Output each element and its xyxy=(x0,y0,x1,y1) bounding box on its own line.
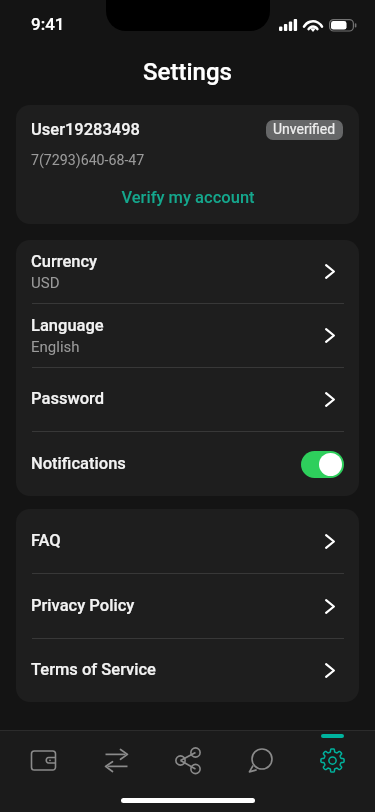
button[interactable]: Terms of Service xyxy=(16,639,359,702)
staticText: Privacy Policy xyxy=(31,596,135,615)
button[interactable]: Wallet xyxy=(7,731,80,793)
staticText: Password xyxy=(31,389,105,408)
button[interactable]: Unverified xyxy=(266,120,343,140)
staticText: 9:41 xyxy=(31,14,65,34)
button[interactable]: Password xyxy=(16,368,359,431)
staticText: 7(7293)640-68-47 xyxy=(31,152,145,169)
button[interactable]: Chat xyxy=(224,731,296,793)
button[interactable]: Verify my account xyxy=(16,182,359,212)
staticText: USD xyxy=(31,274,60,292)
staticText: Currency xyxy=(31,252,98,271)
staticText: Verify my account xyxy=(121,188,255,207)
button[interactable]: Language xyxy=(16,304,359,367)
staticText: Settings xyxy=(143,58,232,86)
button[interactable]: Notifications xyxy=(16,432,359,496)
staticText: Notifications xyxy=(31,454,301,473)
button[interactable]: Settings xyxy=(296,731,368,793)
staticText: English xyxy=(31,338,80,356)
button[interactable]: FAQ xyxy=(16,509,359,573)
button[interactable]: Share xyxy=(152,731,224,793)
staticText: Language xyxy=(31,316,104,335)
staticText: User19283498 xyxy=(31,120,140,139)
staticText: Unverified xyxy=(273,121,336,137)
button[interactable]: Privacy Policy xyxy=(16,574,359,638)
staticText: FAQ xyxy=(31,531,61,550)
staticText: Terms of Service xyxy=(31,660,156,679)
button[interactable]: Transfer xyxy=(80,731,152,793)
button[interactable]: Currency xyxy=(16,240,359,303)
button[interactable] xyxy=(301,451,344,478)
